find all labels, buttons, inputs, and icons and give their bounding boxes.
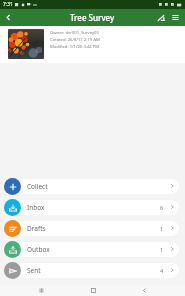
staticText: Inbox	[27, 203, 45, 212]
staticText: Sent	[27, 266, 41, 275]
staticText: Tree Survey	[70, 12, 115, 23]
button[interactable]: Menu	[168, 10, 183, 25]
staticText: 4	[160, 267, 164, 274]
button[interactable]: Recents	[31, 285, 51, 296]
staticText: 1	[160, 246, 164, 253]
staticText: Drafts	[27, 224, 46, 233]
button[interactable]: Inbox	[4, 198, 179, 216]
staticText: Modified: 1/1/20 3:44 PM	[50, 44, 100, 50]
button[interactable]: Drafts	[4, 219, 179, 237]
button[interactable]: Back	[0, 9, 17, 26]
button[interactable]: Back	[134, 285, 154, 296]
staticText: Created: 26/8/17 2:19 AM	[50, 37, 100, 43]
staticText: Collect	[27, 182, 48, 191]
staticText: 6	[160, 204, 164, 211]
button[interactable]: Home	[83, 285, 103, 296]
staticText: 1	[160, 225, 164, 232]
button[interactable]: Outbox	[4, 240, 179, 258]
button[interactable]: Owner: dvr001_Survey05	[0, 26, 185, 63]
staticText: 7:31	[3, 1, 13, 8]
button[interactable]: Sync status	[153, 10, 168, 25]
staticText: Outbox	[27, 245, 50, 254]
button[interactable]: Sent	[4, 261, 179, 279]
staticText: Owner: dvr001_Survey05	[50, 30, 99, 36]
button[interactable]: Collect	[4, 177, 179, 195]
